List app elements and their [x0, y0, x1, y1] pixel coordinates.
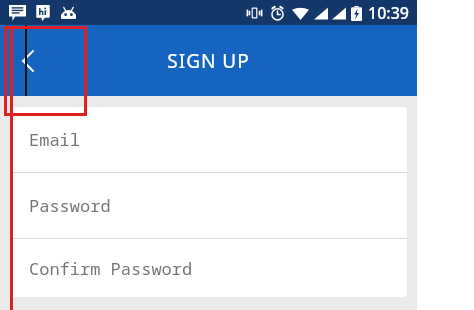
staticText: 10:39	[368, 2, 409, 24]
button[interactable]: Password	[11, 173, 407, 238]
button[interactable]: Email	[11, 107, 407, 172]
staticText: Confirm Password	[29, 257, 193, 280]
staticText: Email	[29, 128, 80, 151]
staticText: Password	[29, 194, 111, 217]
staticText: SIGN UP	[0, 48, 417, 74]
button[interactable]: Back	[0, 33, 56, 89]
button[interactable]: Confirm Password	[11, 239, 407, 297]
